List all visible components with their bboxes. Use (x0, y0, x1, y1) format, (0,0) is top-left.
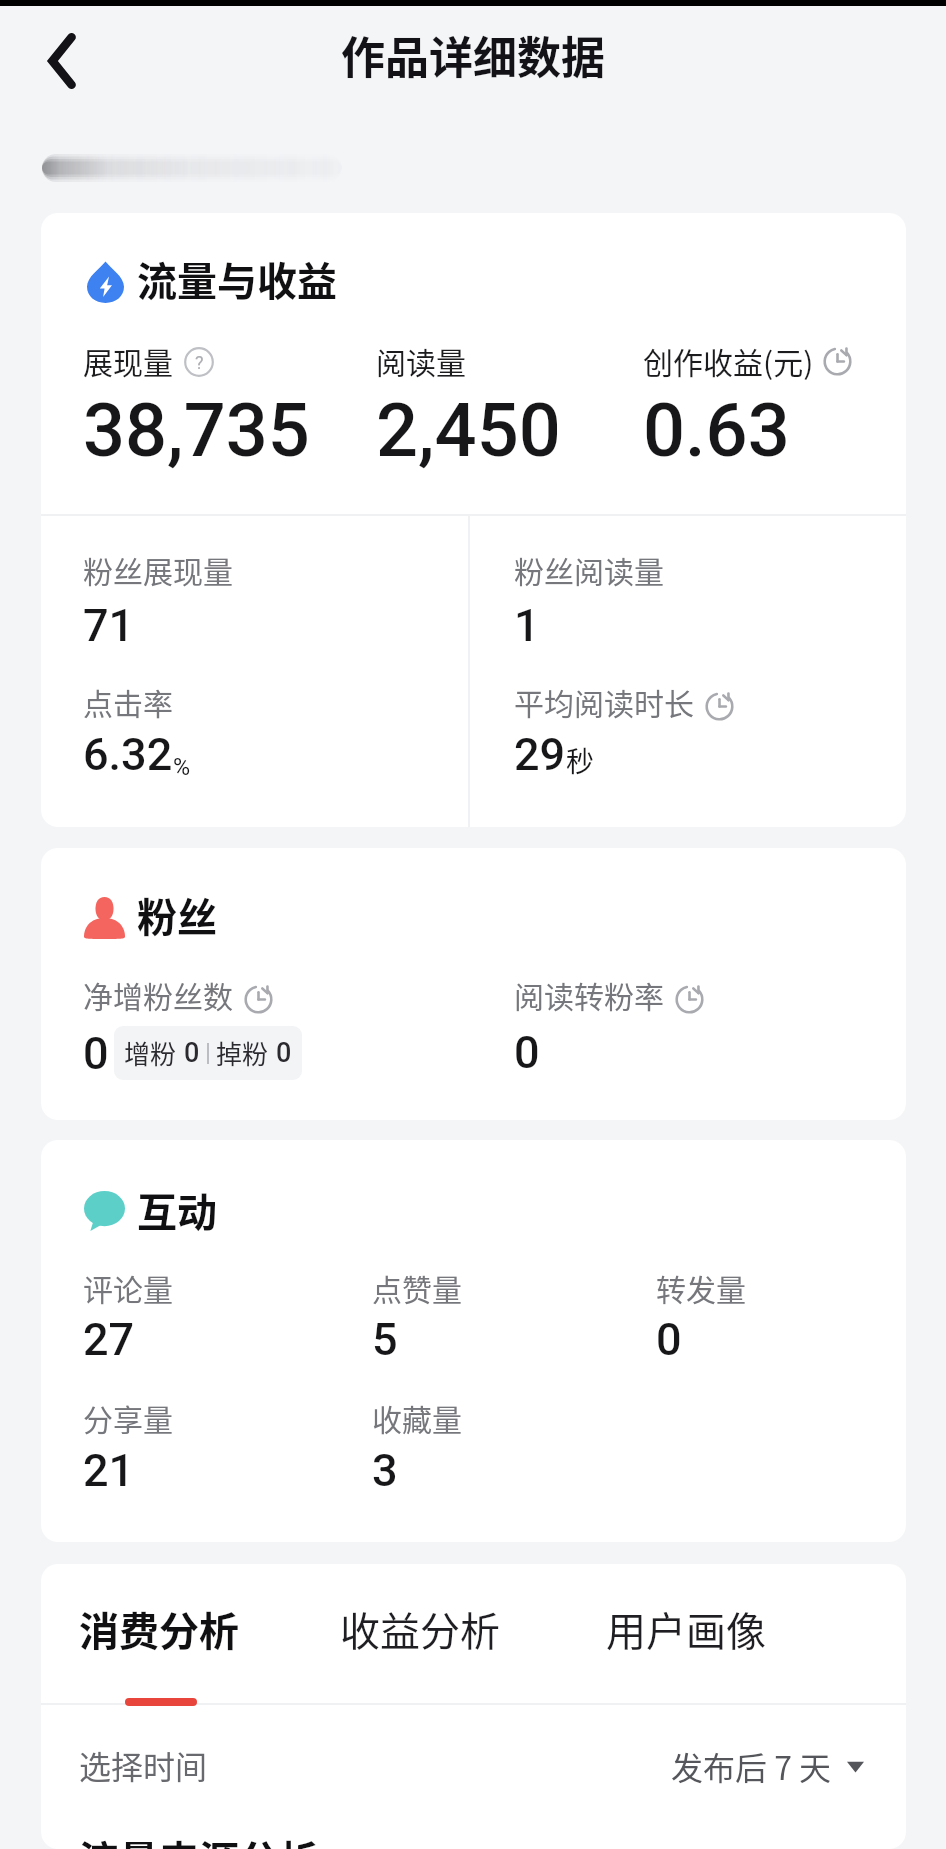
staticText: 收益分析 (340, 1600, 500, 1658)
staticText: 分享量 (83, 1396, 173, 1439)
staticText: 点击率 (83, 680, 173, 723)
staticText: 消费分析 (79, 1600, 239, 1658)
staticText: 增粉 (124, 1034, 177, 1072)
staticText: 净增粉丝数 (83, 973, 233, 1016)
staticText: 秒 (566, 740, 594, 780)
staticText: 0.63 (643, 387, 790, 474)
staticText: 2,450 (376, 387, 561, 474)
staticText: 作品详细数据 (341, 23, 605, 87)
staticText: 收藏量 (372, 1396, 462, 1439)
staticText: 0 (656, 1313, 682, 1366)
staticText: 选择时间 (79, 1742, 208, 1788)
staticText: 流量与收益 (137, 250, 337, 308)
button[interactable]: Back (16, 15, 108, 107)
staticText: 转发量 (656, 1266, 746, 1309)
staticText: 互动 (137, 1181, 217, 1239)
staticText: 掉粉 (216, 1034, 269, 1072)
staticText: 粉丝展现量 (83, 548, 233, 591)
staticText: 6.32 (83, 728, 173, 781)
staticText: 0 (514, 1026, 540, 1079)
staticText: 38,735 (83, 387, 310, 474)
staticText: 展现量 (83, 339, 173, 382)
staticText: 用户画像 (606, 1600, 766, 1658)
staticText: 粉丝阅读量 (514, 548, 664, 591)
staticText: 0 (83, 1027, 109, 1080)
staticText: 平均阅读时长 (514, 680, 694, 723)
staticText: 点赞量 (372, 1266, 462, 1309)
staticText: 阅读量 (376, 339, 466, 382)
staticText: 发布后 7 天 (671, 1743, 832, 1789)
staticText: 1 (514, 599, 540, 652)
button[interactable]: 用户画像 (591, 1578, 781, 1688)
staticText: 71 (83, 599, 135, 652)
staticText: 创作收益(元) (643, 339, 814, 382)
button[interactable]: 发布后 7 天 (651, 1727, 884, 1805)
staticText: 21 (83, 1444, 135, 1497)
staticText: 27 (83, 1313, 135, 1366)
staticText: 0 (276, 1037, 292, 1069)
staticText: 3 (372, 1444, 398, 1497)
staticText: 0 (184, 1037, 200, 1069)
staticText: 5 (372, 1313, 398, 1366)
staticText: 粉丝 (137, 886, 217, 944)
staticText: 流量来源分析 (79, 1829, 319, 1849)
staticText: % (173, 753, 191, 780)
staticText: ? (195, 352, 204, 373)
staticText: 评论量 (83, 1266, 173, 1309)
button[interactable]: 收益分析 (325, 1578, 515, 1688)
staticText: 阅读转粉率 (514, 973, 664, 1016)
staticText: 29 (514, 728, 566, 781)
button[interactable]: 消费分析 (63, 1578, 255, 1688)
